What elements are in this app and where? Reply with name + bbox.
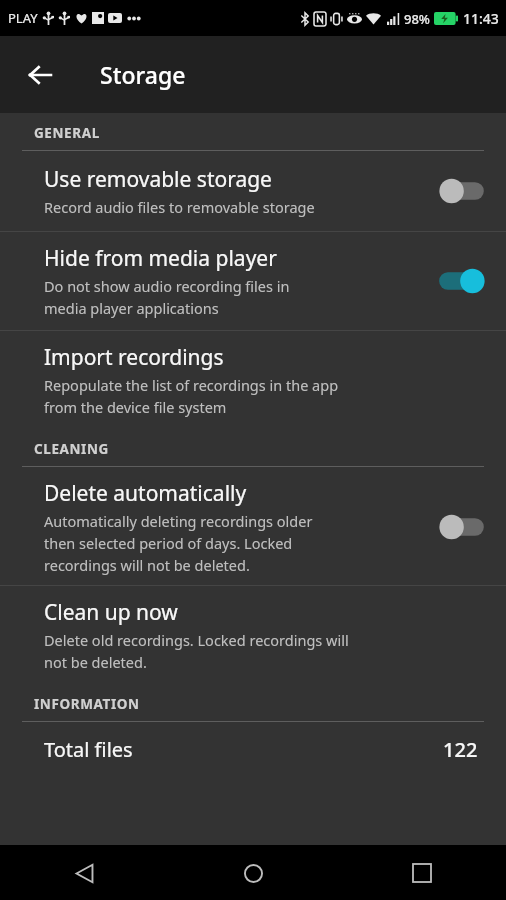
staticText: Automatically deleting recordings older — [44, 511, 313, 531]
staticText: media player applications — [44, 298, 219, 318]
button[interactable]: Clean up now — [0, 586, 506, 684]
staticText: 122 — [443, 736, 478, 763]
staticText: Use removable storage — [44, 165, 272, 194]
button[interactable]: Use removable storage — [0, 151, 506, 231]
button[interactable]: Back — [16, 51, 64, 99]
staticText: Do not show audio recording files in — [44, 276, 290, 296]
button[interactable]: Import recordings — [0, 331, 506, 429]
staticText: Repopulate the list of recordings in the… — [44, 375, 339, 395]
button[interactable]: Total files — [0, 722, 506, 777]
staticText: 11:43 — [463, 9, 499, 28]
button[interactable]: Toggle off — [436, 510, 488, 544]
staticText: then selected period of days. Locked — [44, 533, 293, 553]
button[interactable]: Toggle on — [436, 264, 488, 298]
staticText: CLEANING — [34, 440, 109, 458]
staticText: Clean up now — [44, 598, 178, 627]
staticText: Total files — [44, 736, 443, 763]
staticText: Delete automatically — [44, 479, 247, 508]
staticText: PLAY — [8, 9, 38, 27]
button[interactable]: Toggle off — [436, 174, 488, 208]
staticText: GENERAL — [34, 124, 100, 142]
button[interactable]: Back — [58, 847, 110, 899]
staticText: recordings will not be deleted. — [44, 555, 250, 575]
button[interactable]: Recents — [396, 847, 448, 899]
staticText: INFORMATION — [34, 695, 140, 713]
staticText: Delete old recordings. Locked recordings… — [44, 630, 349, 650]
staticText: from the device file system — [44, 397, 227, 417]
staticText: Storage — [100, 59, 186, 90]
staticText: 98% — [404, 10, 430, 28]
button[interactable]: Home — [227, 847, 279, 899]
button[interactable]: Hide from media player — [0, 232, 506, 330]
staticText: not be deleted. — [44, 652, 147, 672]
staticText: Import recordings — [44, 343, 224, 372]
staticText: Hide from media player — [44, 244, 277, 273]
button[interactable]: Delete automatically — [0, 467, 506, 585]
staticText: Record audio files to removable storage — [44, 197, 315, 217]
